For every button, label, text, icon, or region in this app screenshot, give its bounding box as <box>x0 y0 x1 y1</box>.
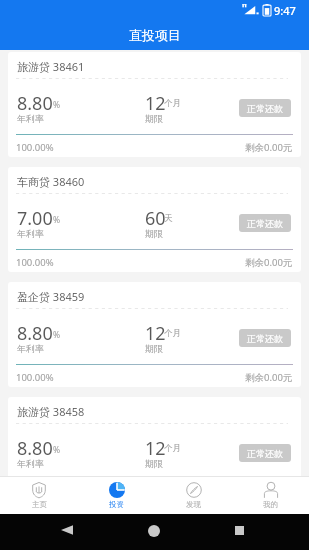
staticText: % <box>53 444 61 456</box>
staticText: 我的 <box>263 500 278 509</box>
button[interactable]: 正常还款 <box>239 99 291 117</box>
staticText: 100.00% <box>16 371 54 384</box>
staticText: 年利率 <box>17 458 44 469</box>
staticText: 7.00 <box>17 206 53 231</box>
button[interactable]: 旅游贷 38461 <box>8 52 301 157</box>
staticText: 旅游贷 38458 <box>17 404 85 419</box>
staticText: 年利率 <box>17 113 44 124</box>
button[interactable]: 正常还款 <box>239 214 291 232</box>
staticText: 车商贷 38460 <box>17 174 85 189</box>
staticText: 8.80 <box>17 436 53 461</box>
staticText: 正常还款 <box>247 448 283 459</box>
staticText: 期限 <box>145 343 163 354</box>
staticText: 期限 <box>145 458 163 469</box>
staticText: 主页 <box>32 500 47 509</box>
button[interactable]: 我的 <box>232 477 309 514</box>
staticText: 100.00% <box>16 256 54 269</box>
staticText: 9:47 <box>274 3 296 18</box>
button[interactable]: 正常还款 <box>239 329 291 347</box>
staticText: 发现 <box>186 500 201 509</box>
staticText: % <box>53 214 61 226</box>
staticText: 60 <box>145 206 166 231</box>
staticText: 剩余0.00元 <box>245 486 293 499</box>
staticText: 12 <box>145 436 166 461</box>
staticText: 个月 <box>164 328 181 339</box>
other: Back <box>61 525 73 535</box>
button[interactable]: 正常还款 <box>239 444 291 462</box>
staticText: 年利率 <box>17 343 44 354</box>
staticText: 8.80 <box>17 321 53 346</box>
button[interactable]: 主页 <box>0 477 78 514</box>
staticText: 8.80 <box>17 91 53 116</box>
staticText: 盈企贷 38459 <box>17 289 85 304</box>
staticText: 正常还款 <box>247 333 283 344</box>
staticText: 12 <box>145 321 166 346</box>
staticText: 个月 <box>164 98 181 109</box>
button[interactable]: 投资 <box>78 477 155 514</box>
other: Home <box>148 525 160 537</box>
staticText: 12 <box>145 91 166 116</box>
staticText: 剩余0.00元 <box>245 141 293 154</box>
staticText: 年利率 <box>17 228 44 239</box>
button[interactable]: 发现 <box>155 477 232 514</box>
staticText: % <box>53 99 61 111</box>
staticText: 个月 <box>164 443 181 454</box>
staticText: 期限 <box>145 113 163 124</box>
staticText: 投资 <box>109 500 124 509</box>
staticText: 100.00% <box>16 141 54 154</box>
staticText: 剩余0.00元 <box>245 256 293 269</box>
button[interactable]: 盈企贷 38459 <box>8 282 301 387</box>
button[interactable]: 旅游贷 38458 <box>8 397 301 502</box>
staticText: 直投项目 <box>129 27 181 43</box>
staticText: 100.00% <box>16 486 54 499</box>
staticText: 旅游贷 38461 <box>17 59 85 74</box>
staticText: 期限 <box>145 228 163 239</box>
staticText: 正常还款 <box>247 218 283 229</box>
staticText: 天 <box>164 213 173 224</box>
staticText: % <box>53 329 61 341</box>
button[interactable]: 车商贷 38460 <box>8 167 301 272</box>
staticText: 剩余0.00元 <box>245 371 293 384</box>
staticText: 正常还款 <box>247 103 283 114</box>
